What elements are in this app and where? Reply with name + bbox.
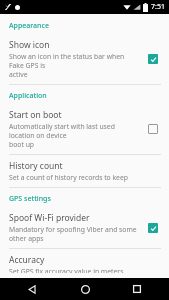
staticText: Set a count of history records to keep	[9, 173, 128, 182]
staticText: Spoof Wi-Fi provider	[9, 212, 90, 224]
button[interactable]: History count	[0, 155, 169, 187]
button[interactable]: Accuracy	[0, 249, 169, 278]
button[interactable]: Spoof Wi-Fi provider	[0, 207, 169, 248]
staticText: Set GPS fix accuracy value in meters	[9, 267, 124, 273]
staticText: GPS settings	[9, 194, 51, 204]
staticText: History count	[9, 160, 63, 172]
button[interactable]: Recents	[117, 278, 157, 300]
button[interactable]: Back	[12, 278, 52, 300]
button[interactable]: Show icon	[0, 34, 169, 84]
staticText: Mandatory for spoofing Viber and some ot…	[9, 225, 139, 243]
staticText: Accuracy	[9, 254, 45, 266]
staticText: Appearance	[9, 21, 49, 31]
button[interactable]: Home	[65, 278, 105, 300]
button[interactable]: Enabled checkbox	[145, 220, 161, 236]
button[interactable]: Enabled checkbox	[145, 51, 161, 67]
button[interactable]: Disabled checkbox	[145, 121, 161, 137]
staticText: Automatically start with last used locat…	[9, 122, 139, 149]
staticText: Show icon	[9, 39, 50, 51]
staticText: Show an icon in the status bar when Fake…	[9, 52, 139, 79]
staticText: Start on boot	[9, 109, 62, 121]
button[interactable]: Start on boot	[0, 104, 169, 154]
staticText: Application	[9, 91, 47, 101]
staticText: 7:51	[151, 2, 165, 12]
